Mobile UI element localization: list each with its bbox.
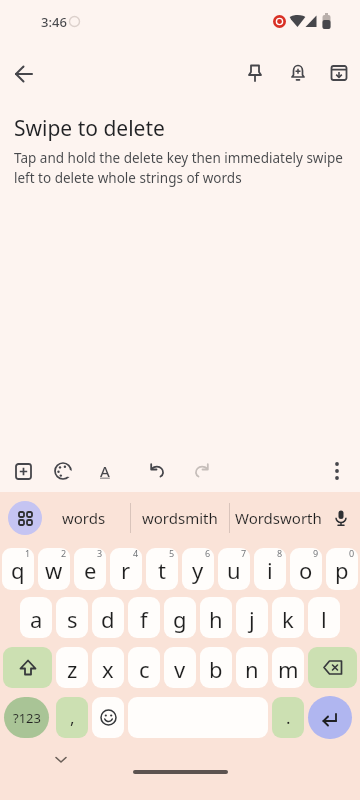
- button[interactable]: ,: [56, 697, 88, 738]
- button[interactable]: words: [44, 492, 124, 544]
- button[interactable]: [324, 501, 358, 535]
- staticText: 3:46: [41, 13, 67, 31]
- staticText: r: [121, 555, 131, 585]
- staticText: 6: [205, 547, 211, 559]
- staticText: j: [249, 604, 255, 634]
- staticText: Swipe to delete: [14, 114, 165, 143]
- button[interactable]: p: [326, 548, 358, 590]
- staticText: 2: [61, 547, 67, 559]
- staticText: 7: [241, 547, 247, 559]
- button[interactable]: w: [38, 548, 70, 590]
- button[interactable]: s: [56, 597, 88, 638]
- staticText: b: [209, 654, 223, 684]
- button[interactable]: r: [110, 548, 142, 590]
- button[interactable]: [8, 501, 42, 535]
- button[interactable]: [282, 57, 314, 89]
- staticText: f: [140, 604, 148, 634]
- staticText: 5: [169, 547, 175, 559]
- button[interactable]: [239, 57, 271, 89]
- button[interactable]: [46, 454, 80, 488]
- button[interactable]: y: [182, 548, 214, 590]
- button[interactable]: A: [88, 454, 122, 488]
- button[interactable]: [140, 454, 174, 488]
- button[interactable]: [128, 697, 268, 738]
- button[interactable]: [308, 647, 357, 688]
- button[interactable]: [92, 697, 124, 738]
- button[interactable]: d: [92, 597, 124, 638]
- button[interactable]: f: [128, 597, 160, 638]
- button[interactable]: i: [254, 548, 286, 590]
- button[interactable]: ?123: [4, 697, 49, 738]
- staticText: g: [173, 604, 187, 634]
- staticText: 1: [25, 547, 31, 559]
- staticText: u: [227, 555, 241, 585]
- staticText: 4: [133, 547, 139, 559]
- staticText: ?123: [13, 709, 41, 727]
- staticText: d: [101, 604, 115, 634]
- staticText: wordsmith: [142, 508, 218, 528]
- staticText: 0: [349, 547, 355, 559]
- button[interactable]: t: [146, 548, 178, 590]
- staticText: Tap and hold the delete key then immedia…: [14, 149, 343, 187]
- staticText: v: [174, 654, 186, 684]
- button[interactable]: [185, 454, 219, 488]
- button[interactable]: [308, 696, 352, 739]
- staticText: A: [100, 461, 110, 481]
- staticText: k: [282, 604, 294, 634]
- button[interactable]: [6, 454, 40, 488]
- button[interactable]: .: [272, 697, 304, 738]
- button[interactable]: e: [74, 548, 106, 590]
- staticText: i: [267, 555, 273, 585]
- staticText: 3: [97, 547, 103, 559]
- staticText: w: [45, 555, 63, 585]
- button[interactable]: g: [164, 597, 196, 638]
- button[interactable]: b: [200, 647, 232, 688]
- button[interactable]: j: [236, 597, 268, 638]
- staticText: t: [158, 555, 166, 585]
- staticText: p: [335, 555, 349, 585]
- button[interactable]: x: [92, 647, 124, 688]
- staticText: x: [102, 654, 114, 684]
- staticText: y: [192, 555, 204, 585]
- staticText: l: [321, 604, 327, 634]
- staticText: a: [30, 604, 43, 634]
- button[interactable]: [320, 454, 354, 488]
- button[interactable]: Wordsworth: [230, 492, 326, 544]
- button[interactable]: h: [200, 597, 232, 638]
- button[interactable]: a: [20, 597, 52, 638]
- staticText: e: [84, 555, 97, 585]
- staticText: words: [62, 508, 106, 528]
- button[interactable]: c: [128, 647, 160, 688]
- button[interactable]: z: [56, 647, 88, 688]
- staticText: o: [299, 555, 313, 585]
- staticText: m: [278, 654, 299, 684]
- button[interactable]: u: [218, 548, 250, 590]
- staticText: c: [139, 654, 150, 684]
- button[interactable]: v: [164, 647, 196, 688]
- staticText: 9: [313, 547, 319, 559]
- button[interactable]: o: [290, 548, 322, 590]
- button[interactable]: [3, 647, 52, 688]
- staticText: h: [209, 604, 223, 634]
- staticText: 8: [277, 547, 283, 559]
- staticText: .: [286, 706, 291, 729]
- button[interactable]: wordsmith: [132, 492, 228, 544]
- staticText: Wordsworth: [235, 508, 322, 528]
- button[interactable]: l: [308, 597, 340, 638]
- button[interactable]: m: [272, 647, 304, 688]
- button[interactable]: [8, 58, 40, 90]
- staticText: s: [67, 604, 78, 634]
- button[interactable]: k: [272, 597, 304, 638]
- staticText: ,: [70, 706, 75, 729]
- staticText: z: [67, 654, 78, 684]
- button[interactable]: [323, 57, 355, 89]
- button[interactable]: q: [2, 548, 34, 590]
- button[interactable]: n: [236, 647, 268, 688]
- staticText: n: [245, 654, 259, 684]
- staticText: q: [11, 555, 25, 585]
